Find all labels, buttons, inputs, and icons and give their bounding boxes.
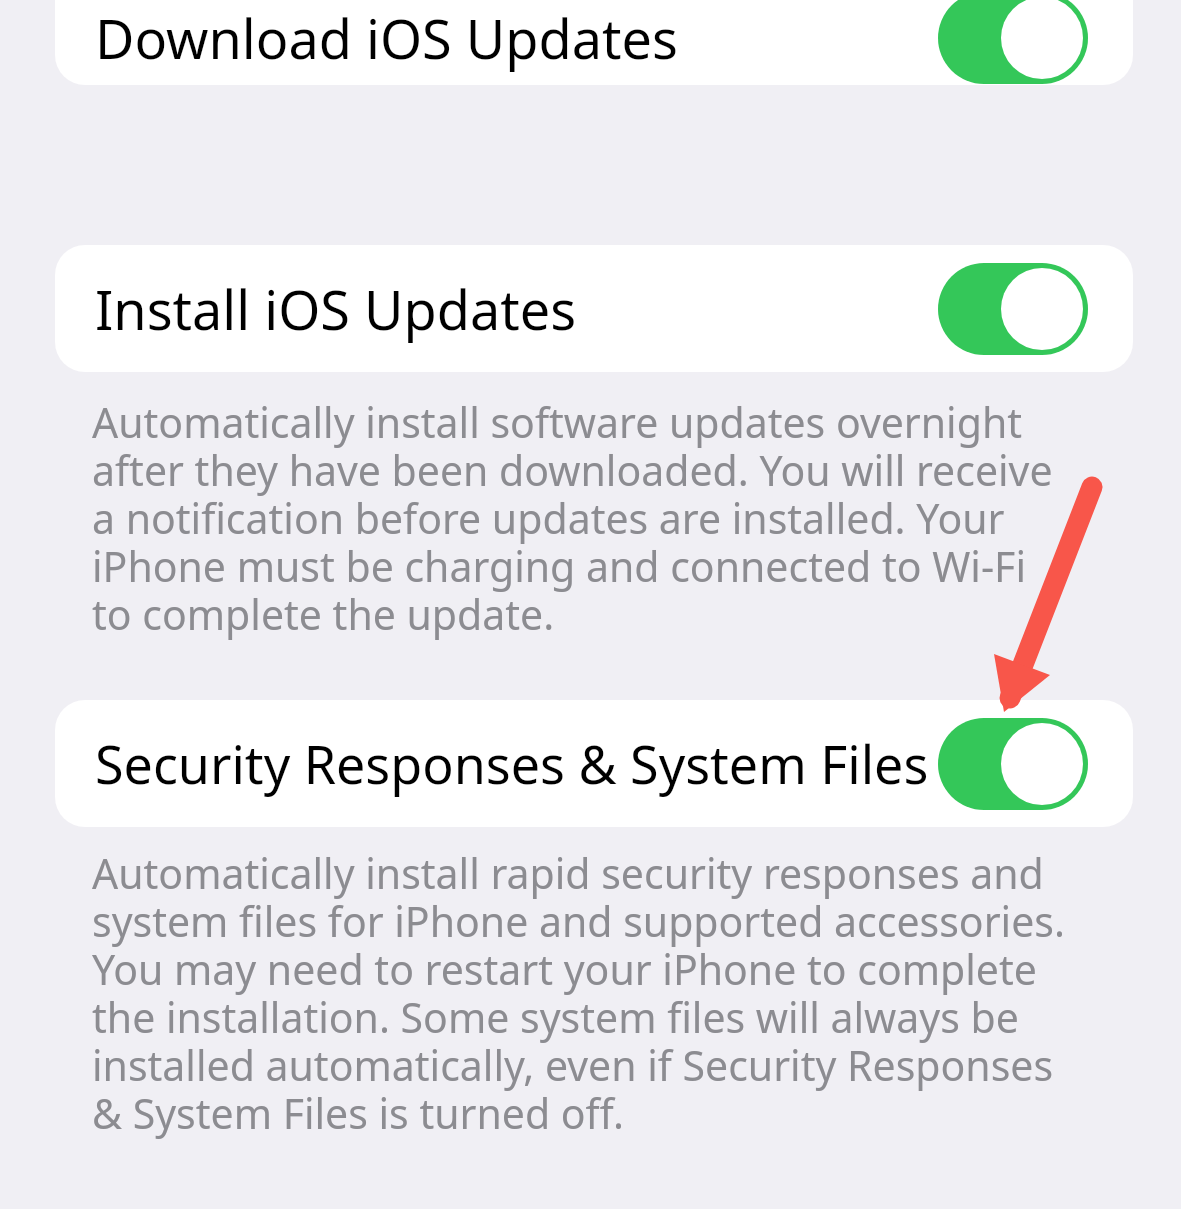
staticText: Security Responses & System Files <box>95 728 929 799</box>
button[interactable]: Download iOS Updates <box>938 0 1088 84</box>
button[interactable]: Install iOS Updates <box>938 263 1088 355</box>
staticText: Automatically install software updates o… <box>92 400 1071 640</box>
button[interactable]: Security Responses & System Files <box>55 700 1133 827</box>
staticText: Automatically install rapid security res… <box>92 851 1071 1139</box>
staticText: Install iOS Updates <box>95 272 577 346</box>
button[interactable]: Download iOS Updates <box>55 0 1133 85</box>
button[interactable]: Security Responses & System Files <box>938 718 1088 810</box>
button[interactable]: Install iOS Updates <box>55 245 1133 372</box>
staticText: Download iOS Updates <box>95 1 678 75</box>
